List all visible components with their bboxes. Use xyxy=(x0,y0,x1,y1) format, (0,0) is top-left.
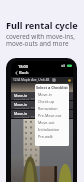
staticText: Move-out xyxy=(38,120,55,125)
staticText: Full rental cycle xyxy=(6,19,78,32)
button[interactable]: Check-up xyxy=(35,98,69,105)
staticText: Move-in xyxy=(14,93,28,98)
button[interactable]: Move-in xyxy=(11,110,73,118)
button[interactable]: Move-in xyxy=(11,92,73,100)
staticText: Renovation xyxy=(38,106,58,111)
button[interactable]: Move-in xyxy=(11,101,73,109)
staticText: Move-in xyxy=(14,102,28,107)
button[interactable]: Back xyxy=(11,69,73,77)
staticText: completed 2024 xyxy=(14,116,38,118)
staticText: Initialization xyxy=(38,127,60,132)
staticText: Select a Checklist xyxy=(36,85,68,90)
staticText: 1234 Maple Ave, Unit 4B xyxy=(13,78,50,82)
staticText: Move-in xyxy=(14,111,28,116)
staticText: Back xyxy=(19,70,29,76)
staticText: Pre-Move-out xyxy=(38,113,62,118)
staticText: Move-in xyxy=(38,92,52,97)
staticText: Check-up xyxy=(38,99,55,104)
button[interactable]: Initialization xyxy=(35,126,69,133)
button[interactable]: Pre-Move-out xyxy=(35,112,69,119)
other: Back xyxy=(15,71,18,75)
staticText: completed 2024 xyxy=(14,107,38,109)
staticText: 18:00 xyxy=(18,64,28,69)
button[interactable]: Pre-walk xyxy=(35,133,69,140)
staticText: completed 2024 xyxy=(14,98,38,100)
staticText: covered with move-ins, move-outs and mor… xyxy=(6,32,75,48)
button[interactable]: Renovation xyxy=(35,105,69,112)
staticText: Pre-walk xyxy=(38,134,53,139)
button[interactable]: Move-in xyxy=(35,91,69,98)
button[interactable]: Move-out xyxy=(35,119,69,126)
